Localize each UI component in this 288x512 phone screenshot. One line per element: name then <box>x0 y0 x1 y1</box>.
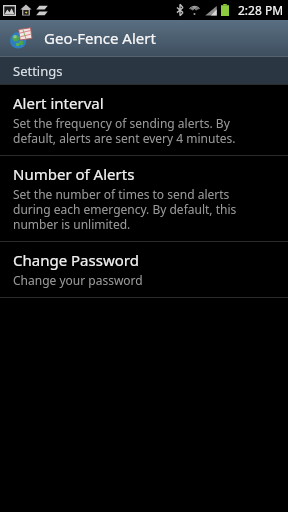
staticText: Alert interval <box>13 93 104 113</box>
staticText: Geo-Fence Alert <box>44 28 156 48</box>
button[interactable]: Change Password <box>0 242 288 297</box>
button[interactable]: Geo-Fence Alert <box>0 20 288 56</box>
staticText: Number of Alerts <box>13 164 135 184</box>
staticText: Set the frequency of sending alerts. By … <box>13 115 270 146</box>
staticText: Set the number of times to send alerts d… <box>13 186 270 232</box>
button[interactable]: Number of Alerts <box>0 156 288 241</box>
staticText: Change your password <box>13 272 143 288</box>
button[interactable]: Alert interval <box>0 85 288 155</box>
staticText: Change Password <box>13 250 139 270</box>
staticText: 2:28 PM <box>238 2 284 18</box>
staticText: Settings <box>13 62 63 80</box>
